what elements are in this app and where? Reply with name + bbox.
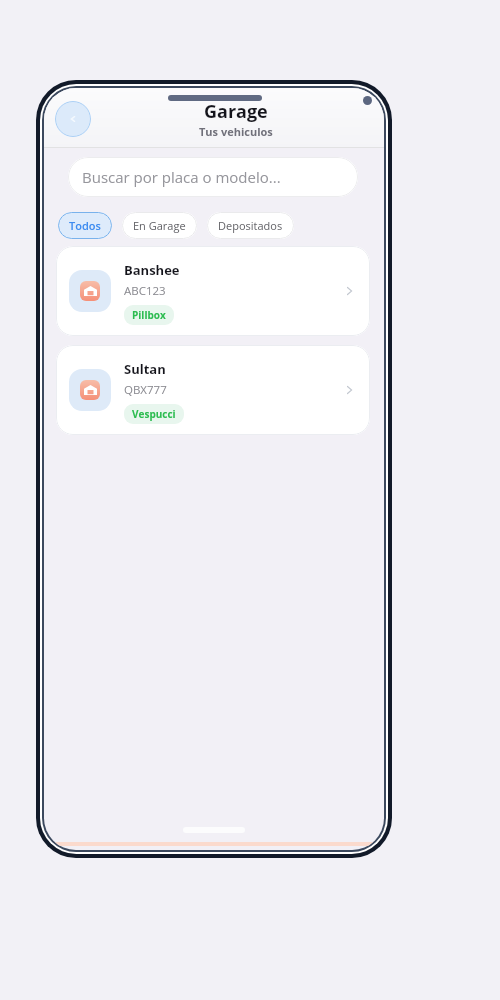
button[interactable]: Depositados xyxy=(207,212,294,239)
staticText: QBX777 xyxy=(124,382,167,398)
button[interactable]: Back xyxy=(55,101,91,137)
staticText: Depositados xyxy=(218,218,283,233)
staticText: Banshee xyxy=(124,261,180,279)
staticText: Sultan xyxy=(124,360,166,378)
button[interactable]: Sultan xyxy=(56,345,370,435)
button[interactable]: Todos xyxy=(58,212,112,239)
staticText: En Garage xyxy=(133,218,186,233)
staticText: Garage xyxy=(204,99,268,124)
staticText: Vespucci xyxy=(132,407,176,421)
button[interactable]: Buscar por placa o modelo... xyxy=(68,157,358,197)
staticText: Tus vehiculos xyxy=(199,124,273,139)
button[interactable]: Banshee xyxy=(56,246,370,336)
staticText: Buscar por placa o modelo... xyxy=(82,167,281,187)
button[interactable]: En Garage xyxy=(122,212,197,239)
staticText: ABC123 xyxy=(124,283,166,299)
staticText: Pillbox xyxy=(132,308,166,322)
staticText: Todos xyxy=(69,218,101,233)
